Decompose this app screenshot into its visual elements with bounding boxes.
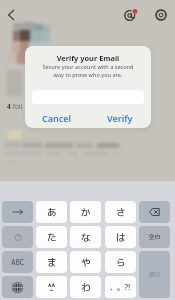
staticText: た	[47, 231, 57, 244]
staticText: 空白	[149, 233, 161, 241]
button[interactable]: な	[70, 226, 101, 248]
staticText: foll	[11, 102, 23, 111]
staticText: か	[81, 206, 91, 219]
staticText: 改行	[149, 271, 161, 279]
button[interactable]: Settings	[150, 4, 172, 26]
button[interactable]: ABC keyboard	[2, 251, 33, 273]
button[interactable]: Next candidate	[2, 201, 33, 223]
button[interactable]: Delete	[139, 201, 170, 223]
staticText: わ	[81, 281, 91, 294]
button[interactable]: さ	[105, 201, 136, 223]
staticText: Secure your account with a second way to…	[25, 63, 151, 79]
staticText: は	[116, 231, 126, 244]
button[interactable]: あ	[36, 201, 67, 223]
button[interactable]: わ	[70, 276, 101, 298]
staticText: あ	[47, 206, 57, 219]
button[interactable]: Change language	[2, 276, 33, 298]
button[interactable]: た	[36, 226, 67, 248]
staticText: ABC	[11, 258, 25, 267]
button[interactable]: か	[70, 201, 101, 223]
button[interactable]	[36, 276, 67, 298]
button[interactable]: Verify	[88, 108, 151, 128]
staticText: Cancel	[42, 112, 72, 124]
staticText: さ	[116, 206, 126, 219]
staticText: 4	[7, 102, 11, 111]
button[interactable]: Back	[0, 4, 22, 26]
button[interactable]: や	[70, 251, 101, 273]
button[interactable]: ら	[105, 251, 136, 273]
button[interactable]: 空白	[139, 226, 170, 248]
button[interactable]: Undo	[2, 226, 33, 248]
staticText: や	[81, 256, 91, 269]
button[interactable]: ま	[36, 251, 67, 273]
staticText: Verify	[107, 112, 133, 124]
button[interactable]: Cancel	[25, 108, 88, 128]
button[interactable]: Mentions	[119, 4, 141, 26]
staticText: 、。?!	[110, 282, 131, 292]
button[interactable]: 、。?!	[105, 276, 136, 298]
button[interactable]: 改行	[139, 251, 170, 298]
staticText: な	[81, 231, 91, 244]
staticText: ま	[47, 256, 57, 269]
button[interactable]: は	[105, 226, 136, 248]
staticText: ら	[116, 256, 126, 269]
staticText: Verify your Email	[25, 53, 151, 63]
